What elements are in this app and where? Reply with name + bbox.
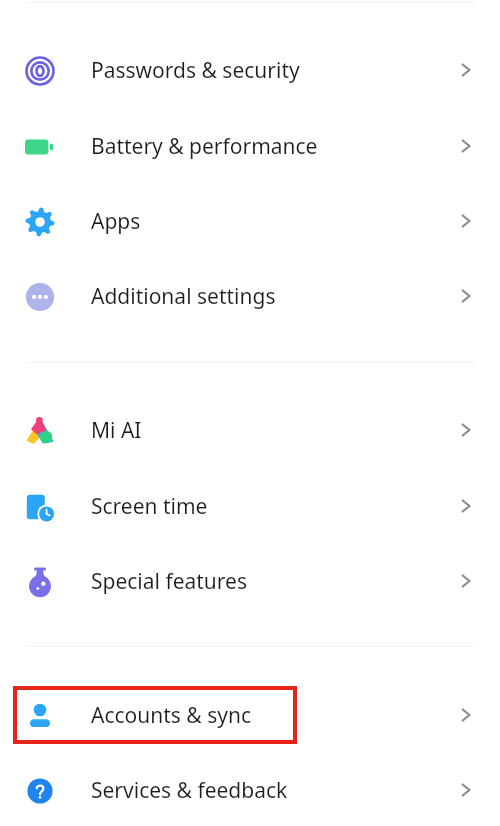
button[interactable]: Screen time <box>0 469 500 544</box>
staticText: Screen time <box>91 492 208 521</box>
staticText: Mi AI <box>91 416 142 445</box>
button[interactable]: Special features <box>0 544 500 619</box>
button[interactable]: Mi AI <box>0 393 500 468</box>
staticText: Battery & performance <box>91 132 318 161</box>
button[interactable]: Passwords & security <box>0 33 500 108</box>
button[interactable]: Apps <box>0 184 500 259</box>
button[interactable]: Accounts & sync <box>0 678 500 753</box>
staticText: Passwords & security <box>91 56 300 85</box>
button[interactable]: Battery & performance <box>0 109 500 184</box>
staticText: Special features <box>91 567 248 596</box>
staticText: Additional settings <box>91 282 276 311</box>
button[interactable]: Services & feedback <box>0 753 500 826</box>
button[interactable]: Additional settings <box>0 259 500 334</box>
staticText: Services & feedback <box>91 776 288 805</box>
staticText: Accounts & sync <box>91 701 251 730</box>
staticText: Apps <box>91 207 141 236</box>
